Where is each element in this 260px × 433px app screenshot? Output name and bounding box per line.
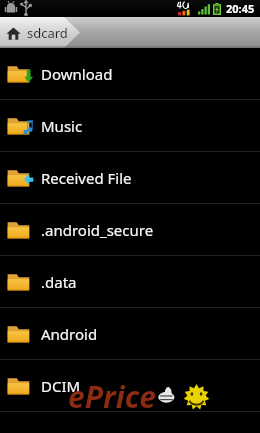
staticText: Music bbox=[41, 116, 83, 136]
staticText: .data bbox=[41, 272, 77, 292]
staticText: 20:45 bbox=[226, 1, 255, 16]
button[interactable]: Download bbox=[0, 48, 260, 99]
staticText: Received File bbox=[41, 168, 132, 188]
button[interactable]: Received File bbox=[0, 152, 260, 203]
button[interactable]: Android bbox=[0, 308, 260, 359]
staticText: sdcard bbox=[27, 24, 68, 42]
staticText: Android bbox=[41, 324, 98, 344]
button[interactable]: Music bbox=[0, 100, 260, 151]
button[interactable]: DCIM bbox=[0, 360, 260, 411]
staticText: ePrice bbox=[68, 376, 156, 417]
button[interactable]: .android_secure bbox=[0, 204, 260, 255]
button[interactable]: sdcard bbox=[0, 17, 260, 48]
staticText: Download bbox=[41, 64, 113, 84]
staticText: .android_secure bbox=[41, 220, 154, 240]
button[interactable]: .data bbox=[0, 256, 260, 307]
staticText: DCIM bbox=[41, 376, 81, 396]
